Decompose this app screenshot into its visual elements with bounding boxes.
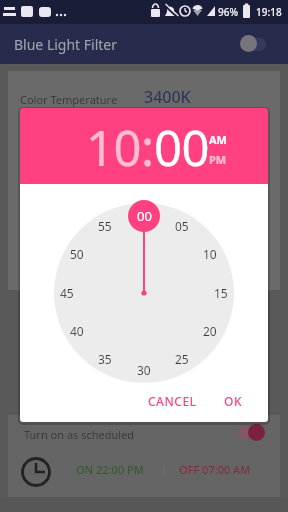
staticText: 20: [203, 323, 217, 339]
staticText: OK: [224, 393, 242, 409]
staticText: 19:18: [256, 5, 282, 19]
button[interactable]: [234, 420, 272, 445]
staticText: 55: [98, 218, 112, 234]
button[interactable]: 35: [90, 350, 120, 368]
button[interactable]: 30: [129, 361, 159, 379]
button[interactable]: 50: [62, 245, 92, 263]
button[interactable]: [236, 31, 274, 56]
button[interactable]: OK: [211, 386, 255, 416]
staticText: Blue Light Filter: [14, 35, 118, 54]
staticText: Color Temperature: [20, 92, 118, 107]
staticText: CANCEL: [148, 393, 197, 409]
staticText: 05: [175, 218, 189, 234]
staticText: AM: [209, 132, 227, 147]
staticText: 10: [203, 246, 217, 262]
button[interactable]: 45: [52, 284, 82, 302]
staticText: |: [161, 461, 168, 476]
staticText: 50: [70, 246, 84, 262]
staticText: PM: [209, 152, 227, 167]
button[interactable]: 15: [206, 284, 236, 302]
button[interactable]: 55: [90, 217, 120, 235]
staticText: 96%: [218, 5, 238, 19]
button[interactable]: 10: [195, 245, 225, 263]
staticText: OFF 07:00 AM: [179, 462, 251, 477]
staticText: 35: [98, 351, 112, 367]
button[interactable]: Blue Light Filter: [8, 28, 158, 60]
button[interactable]: PM: [201, 150, 235, 168]
button[interactable]: 05: [167, 217, 197, 235]
staticText: 25: [175, 351, 189, 367]
button[interactable]: CANCEL: [137, 386, 207, 416]
staticText: 45: [60, 285, 74, 301]
button[interactable]: 00: [128, 200, 160, 232]
button[interactable]: 40: [62, 322, 92, 340]
staticText: 00: [137, 207, 152, 225]
staticText: 15: [214, 285, 228, 301]
button[interactable]: 00: [154, 114, 210, 174]
button[interactable]: 20: [195, 322, 225, 340]
button[interactable]: AM: [201, 130, 235, 148]
button[interactable]: [60, 452, 270, 486]
staticText: 40: [70, 323, 84, 339]
staticText: 3400K: [144, 86, 191, 108]
staticText: Turn on as scheduled: [24, 427, 135, 442]
staticText: ON 22:00 PM: [76, 462, 144, 477]
staticText: 30: [137, 362, 151, 378]
button[interactable]: 10:: [86, 114, 154, 174]
button[interactable]: 25: [167, 350, 197, 368]
